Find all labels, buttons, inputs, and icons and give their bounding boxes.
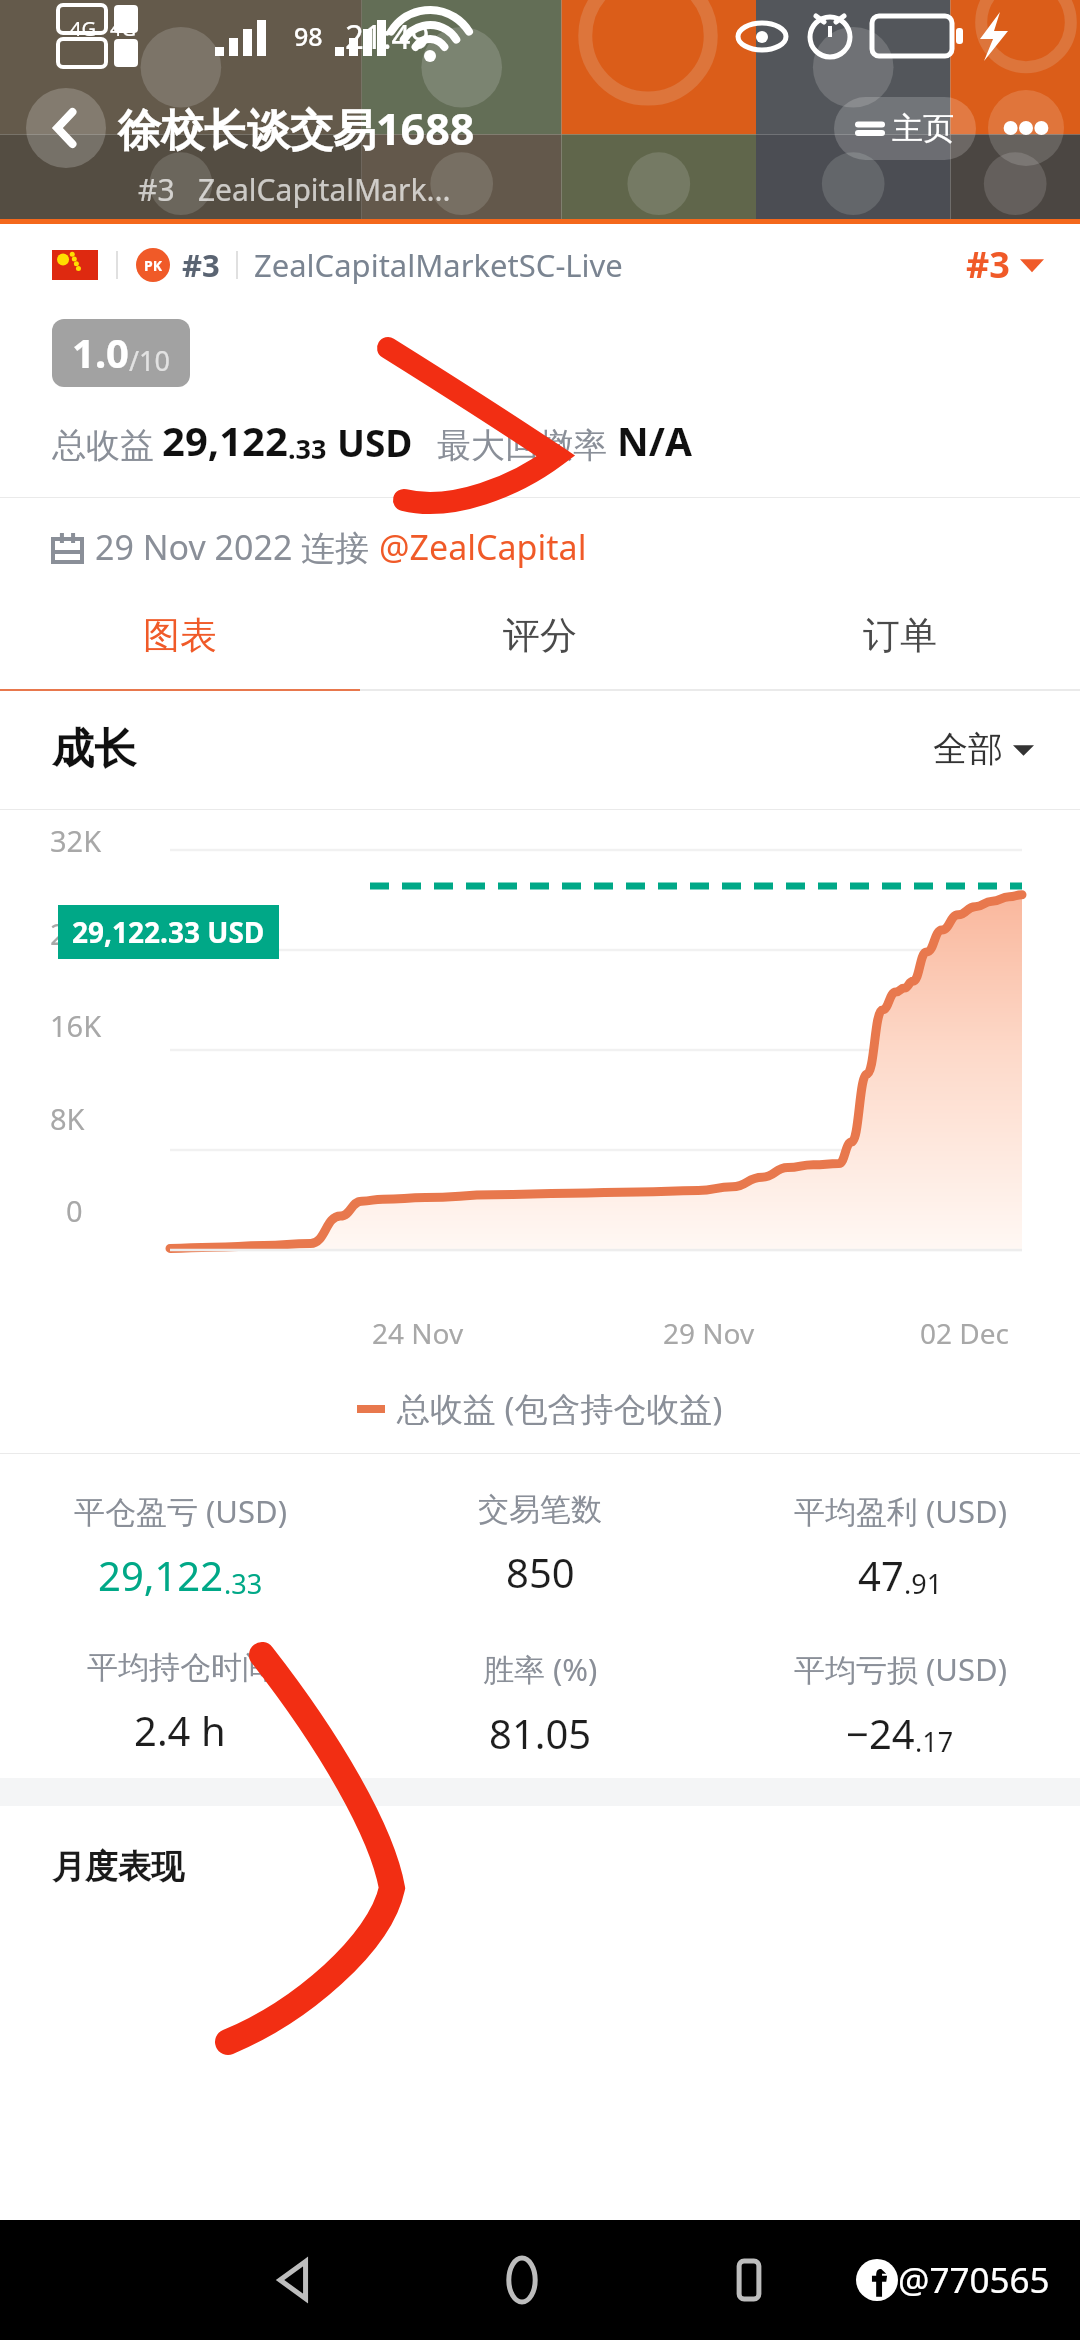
button[interactable]: 主页: [834, 97, 976, 160]
button[interactable]: 全部: [927, 721, 1040, 777]
button[interactable]: Home: [477, 2235, 567, 2325]
staticText: 胜率 (%): [483, 1648, 598, 1690]
staticText: 8K: [50, 1099, 85, 1138]
staticText: 47: [858, 1548, 904, 1602]
staticText: 全部: [933, 727, 1003, 771]
staticText: #3 ZealCapitalMark...: [138, 169, 451, 210]
staticText: 评分: [503, 612, 577, 659]
staticText: 总收益: [52, 424, 154, 467]
staticText: N/A: [617, 414, 692, 467]
staticText: 81.05: [489, 1706, 592, 1760]
staticText: 4G: [110, 15, 136, 42]
staticText: 29,122.33 USD: [72, 913, 265, 951]
staticText: 图表: [143, 612, 217, 659]
staticText: −24: [846, 1706, 915, 1760]
staticText: 29,122: [98, 1548, 224, 1602]
staticText: 4G: [70, 15, 96, 42]
button[interactable]: Back: [26, 88, 106, 168]
staticText: 总收益 (包含持仓收益): [397, 1386, 723, 1431]
staticText: @770565: [898, 2256, 1050, 2304]
staticText: 29,122: [162, 413, 288, 467]
staticText: 最大回撤率: [437, 424, 607, 467]
staticText: 平均持仓时间: [87, 1648, 273, 1687]
staticText: 平仓盈亏 (USD): [74, 1490, 287, 1532]
staticText: ZealCapitalMarketSC-Live: [254, 244, 623, 286]
staticText: 21:49: [345, 14, 430, 59]
button[interactable]: @ZealCapital: [379, 524, 587, 570]
staticText: 29 Nov 2022 连接: [95, 524, 379, 570]
staticText: 2.4 h: [134, 1703, 226, 1757]
staticText: 平均盈利 (USD): [794, 1490, 1007, 1532]
staticText: #3: [966, 240, 1010, 289]
staticText: 主页: [892, 109, 954, 148]
staticText: 1.0: [72, 325, 129, 379]
button[interactable]: 评分: [360, 604, 720, 667]
staticText: 24K: [50, 914, 102, 953]
staticText: 0: [66, 1191, 83, 1230]
staticText: #3: [182, 244, 220, 286]
staticText: 02 Dec: [920, 1314, 1009, 1352]
button[interactable]: Back: [250, 2235, 340, 2325]
staticText: 98: [294, 19, 323, 53]
staticText: 成长: [52, 723, 136, 776]
button[interactable]: 图表: [0, 604, 360, 667]
staticText: 29 Nov: [663, 1314, 755, 1352]
staticText: 24 Nov: [372, 1314, 464, 1352]
staticText: /10: [129, 342, 170, 379]
staticText: 16K: [50, 1006, 102, 1045]
staticText: 徐校长谈交易1688: [118, 99, 475, 158]
staticText: 交易笔数: [478, 1490, 602, 1529]
staticText: 月度表现: [52, 1846, 184, 1888]
staticText: 订单: [863, 612, 937, 659]
staticText: 850: [506, 1545, 575, 1599]
button[interactable]: 订单: [720, 604, 1080, 667]
staticText: .91: [904, 1565, 943, 1602]
staticText: 平均亏损 (USD): [794, 1648, 1007, 1690]
staticText: .17: [915, 1723, 954, 1760]
button[interactable]: Recent apps: [704, 2235, 794, 2325]
staticText: USD: [337, 417, 413, 467]
staticText: 32K: [50, 821, 102, 860]
staticText: PK: [144, 256, 162, 275]
staticText: .33: [224, 1565, 263, 1602]
staticText: .33: [288, 430, 327, 467]
button[interactable]: More options: [988, 90, 1064, 166]
